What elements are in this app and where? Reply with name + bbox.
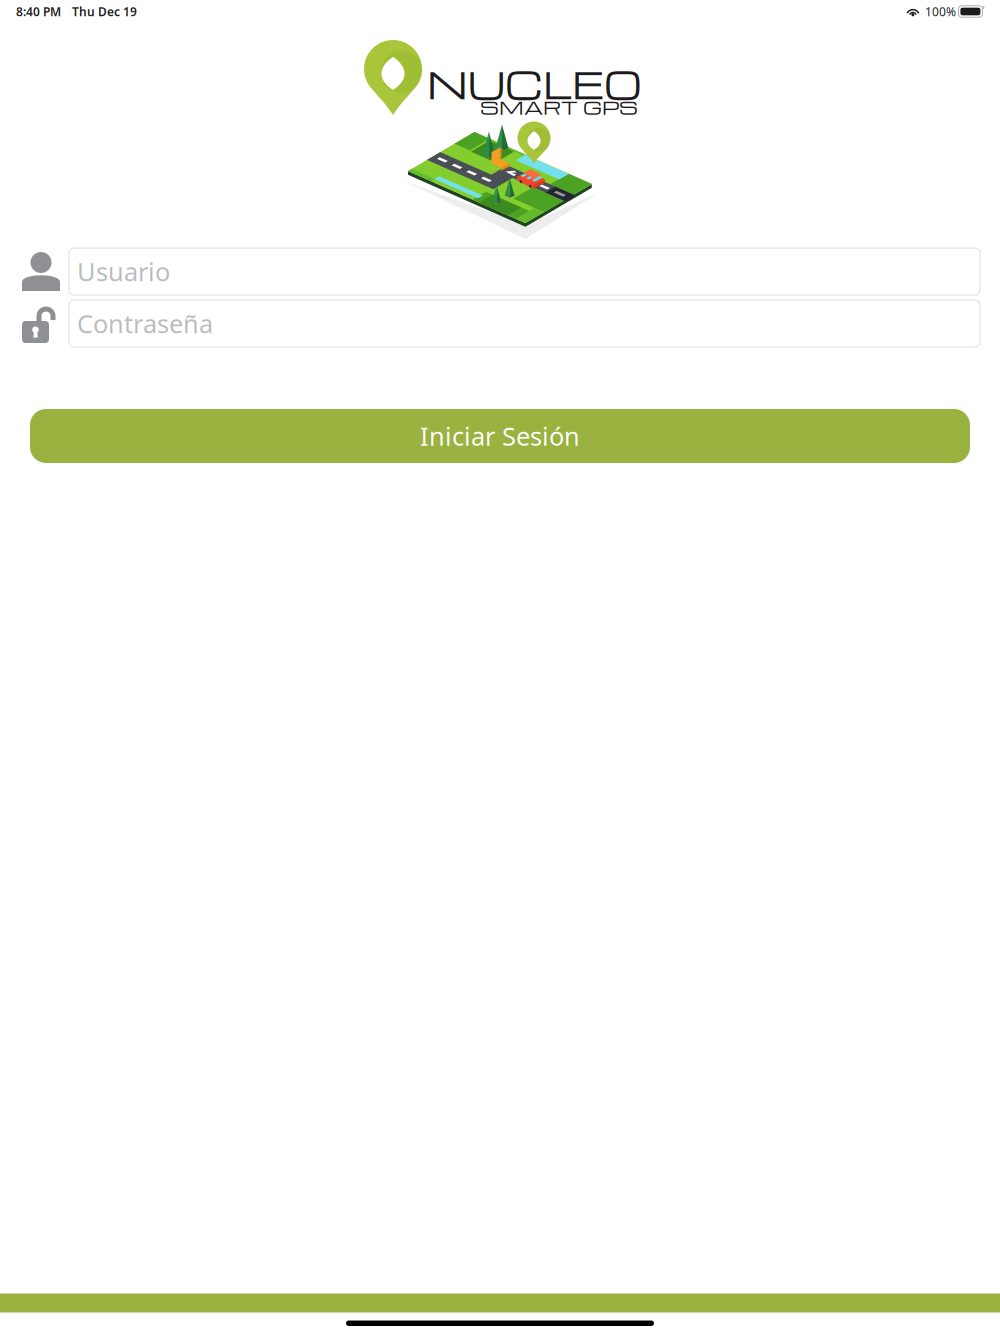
staticText: 100% [925,3,956,19]
button[interactable]: Iniciar Sesión [30,409,970,463]
staticText: Contraseña [77,307,213,340]
staticText: Usuario [77,255,170,288]
staticText: Iniciar Sesión [420,419,580,453]
staticText: SMART GPS [480,94,638,120]
staticText: NUCLEO [427,57,642,109]
staticText: Thu Dec 19 [72,3,137,19]
staticText: 8:40 PM [16,3,61,19]
